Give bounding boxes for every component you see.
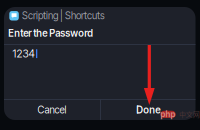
staticText: Done: [136, 104, 160, 116]
staticText: Cancel: [38, 104, 67, 116]
staticText: Scripting | Shortcuts: [22, 10, 105, 22]
button[interactable]: Done: [101, 100, 195, 120]
staticText: 中文网: [179, 109, 200, 119]
staticText: 1234: [13, 47, 35, 60]
staticText: php: [160, 109, 175, 119]
staticText: Enter the Password: [8, 27, 93, 39]
button[interactable]: Cancel: [4, 100, 100, 120]
